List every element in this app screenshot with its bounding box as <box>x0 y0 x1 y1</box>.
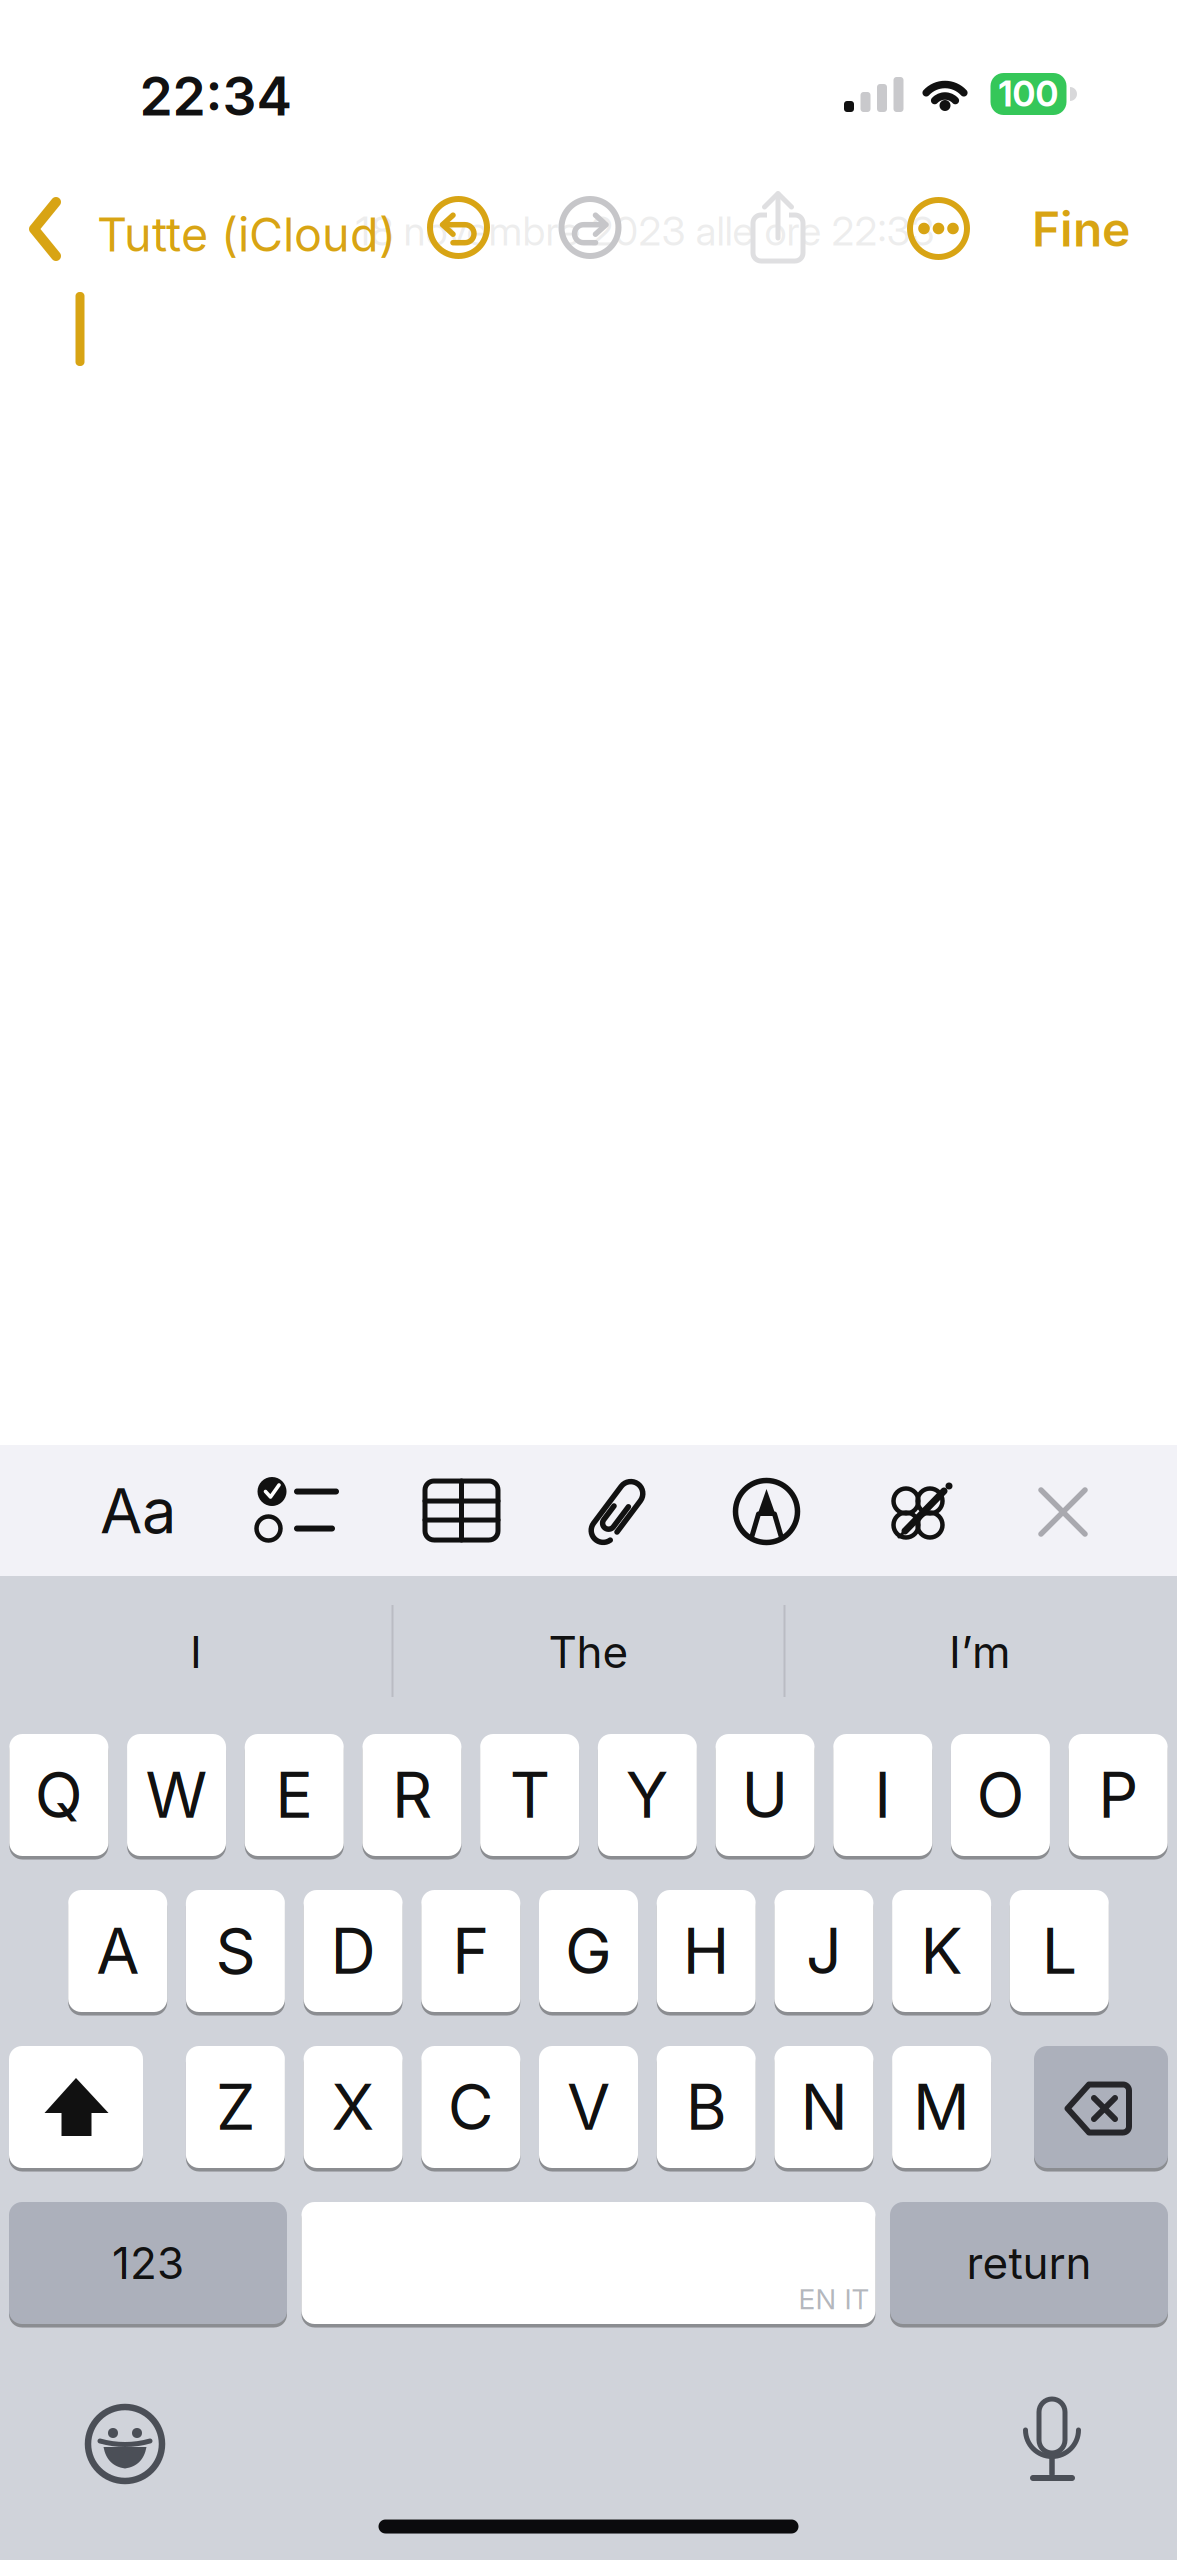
button[interactable]: J <box>774 1890 873 2012</box>
staticText: V <box>567 2070 610 2144</box>
button[interactable]: X <box>304 2046 403 2168</box>
staticText: The <box>548 1626 628 1678</box>
button[interactable]: C <box>421 2046 520 2168</box>
staticText: S <box>215 1914 255 1988</box>
staticText: C <box>448 2070 494 2144</box>
button[interactable]: N <box>774 2046 873 2168</box>
staticText: EN IT <box>798 2282 869 2315</box>
staticText: O <box>976 1758 1024 1832</box>
staticText: Tutte (iCloud) <box>97 207 396 262</box>
button[interactable]: P <box>1069 1734 1168 1856</box>
button[interactable] <box>743 182 813 272</box>
staticText: Aa <box>100 1475 176 1547</box>
staticText: D <box>331 1914 376 1988</box>
button[interactable] <box>1018 1467 1108 1557</box>
staticText: N <box>800 2070 847 2144</box>
staticText: B <box>686 2070 727 2144</box>
button[interactable] <box>903 193 973 263</box>
button[interactable]: return <box>890 2202 1168 2324</box>
staticText: R <box>392 1758 432 1832</box>
staticText: 18 novembre 2023 alle ore 22:33 <box>355 207 934 255</box>
button[interactable]: I’m <box>790 1602 1170 1702</box>
staticText: G <box>565 1914 612 1988</box>
button[interactable]: D <box>304 1890 403 2012</box>
staticText: T <box>510 1758 550 1832</box>
staticText: A <box>96 1914 139 1988</box>
button[interactable]: H <box>657 1890 756 2012</box>
staticText: L <box>1042 1914 1077 1988</box>
button[interactable]: W <box>127 1734 226 1856</box>
button[interactable]: Z <box>186 2046 285 2168</box>
button[interactable]: I <box>833 1734 932 1856</box>
button[interactable] <box>721 1466 811 1556</box>
button[interactable]: U <box>716 1734 815 1856</box>
button[interactable]: T <box>480 1734 579 1856</box>
button[interactable] <box>868 1468 968 1558</box>
staticText: F <box>452 1914 489 1988</box>
button[interactable]: The <box>398 1602 778 1702</box>
staticText: K <box>921 1914 963 1988</box>
button[interactable]: Aa <box>83 1461 193 1561</box>
button[interactable]: S <box>186 1890 285 2012</box>
button[interactable]: V <box>539 2046 638 2168</box>
button[interactable] <box>1034 2046 1168 2168</box>
staticText: Fine <box>1032 201 1130 257</box>
staticText: I <box>874 1758 891 1832</box>
button[interactable] <box>423 192 493 262</box>
staticText: return <box>966 2237 1091 2289</box>
button[interactable]: G <box>539 1890 638 2012</box>
button[interactable]: B <box>657 2046 756 2168</box>
staticText: H <box>683 1914 730 1988</box>
button[interactable]: K <box>892 1890 991 2012</box>
button[interactable]: M <box>892 2046 991 2168</box>
staticText: I <box>190 1626 202 1678</box>
staticText: Z <box>216 2070 255 2144</box>
staticText: W <box>146 1758 208 1832</box>
staticText: P <box>1098 1758 1138 1832</box>
button[interactable]: R <box>362 1734 461 1856</box>
button[interactable]: 123 <box>9 2202 287 2324</box>
staticText: X <box>332 2070 375 2144</box>
staticText: 123 <box>112 2237 184 2289</box>
button[interactable]: I <box>6 1602 386 1702</box>
button[interactable] <box>301 2202 875 2324</box>
button[interactable]: Q <box>9 1734 108 1856</box>
staticText: Q <box>35 1758 83 1832</box>
button[interactable]: Tutte (iCloud) <box>27 199 399 261</box>
staticText: 22:34 <box>139 64 292 127</box>
button[interactable] <box>567 1467 667 1557</box>
staticText: U <box>742 1758 789 1832</box>
staticText: M <box>913 2070 970 2144</box>
staticText: J <box>806 1914 842 1988</box>
button[interactable] <box>9 2046 143 2168</box>
button[interactable]: Fine <box>1032 201 1130 257</box>
button[interactable]: O <box>951 1734 1050 1856</box>
staticText: 100 <box>998 74 1058 114</box>
button[interactable] <box>555 192 625 262</box>
button[interactable]: L <box>1010 1890 1109 2012</box>
button[interactable]: E <box>245 1734 344 1856</box>
staticText: I’m <box>949 1626 1011 1678</box>
button[interactable]: Y <box>598 1734 697 1856</box>
button[interactable]: A <box>68 1890 167 2012</box>
staticText: E <box>275 1758 313 1832</box>
button[interactable]: F <box>421 1890 520 2012</box>
button[interactable] <box>240 1466 350 1556</box>
button[interactable] <box>411 1465 511 1555</box>
button[interactable] <box>1002 2390 1102 2490</box>
staticText: Y <box>626 1758 669 1832</box>
button[interactable] <box>75 2394 175 2494</box>
